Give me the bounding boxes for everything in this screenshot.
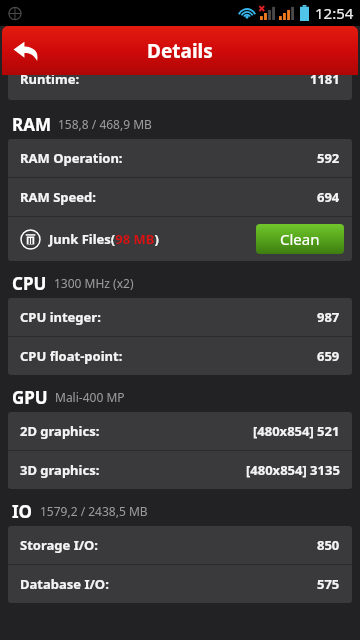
staticText: 158,8 / 468,9 MB — [58, 116, 152, 132]
staticText: GPU — [12, 386, 48, 409]
staticText: 575 — [317, 575, 340, 593]
staticText: CPU integer: — [20, 308, 101, 326]
staticText: CPU float-point: — [20, 347, 123, 365]
staticText: 987 — [317, 308, 340, 326]
staticText: Junk Files(98 MB) — [49, 230, 159, 248]
staticText: IO — [12, 500, 33, 523]
staticText: [480x854] 521 — [253, 422, 340, 440]
button[interactable]: Back — [2, 27, 50, 75]
staticText: Database I/O: — [20, 575, 109, 593]
staticText: 694 — [317, 188, 340, 206]
button[interactable]: Junk Files(98 MB) — [8, 217, 352, 261]
staticText: Details — [147, 38, 213, 64]
button[interactable]: 3D graphics: — [8, 451, 352, 489]
staticText: 1300 MHz (x2) — [54, 275, 134, 291]
staticText: Runtime: — [20, 75, 80, 88]
button[interactable]: CPU integer: — [8, 298, 352, 336]
button[interactable]: RAM Speed: — [8, 178, 352, 216]
staticText: 659 — [317, 347, 340, 365]
button[interactable]: Database I/O: — [8, 565, 352, 603]
staticText: 12:54 — [315, 3, 354, 23]
staticText: [480x854] 3135 — [246, 461, 340, 479]
button[interactable]: Clean — [256, 224, 344, 254]
button[interactable]: Storage I/O: — [8, 526, 352, 564]
button[interactable]: Runtime: — [8, 75, 352, 100]
staticText: 850 — [317, 536, 340, 554]
button[interactable]: RAM Operation: — [8, 139, 352, 177]
staticText: 2D graphics: — [20, 422, 100, 440]
staticText: 3D graphics: — [20, 461, 100, 479]
button[interactable]: 2D graphics: — [8, 412, 352, 450]
staticText: CPU — [12, 272, 47, 295]
staticText: Storage I/O: — [20, 536, 99, 554]
staticText: RAM Speed: — [20, 188, 96, 206]
staticText: RAM Operation: — [20, 149, 123, 167]
staticText: 1181 — [310, 75, 340, 88]
staticText: Clean — [280, 229, 320, 249]
staticText: Mali-400 MP — [55, 389, 125, 405]
staticText: RAM — [12, 113, 51, 136]
staticText: 592 — [317, 149, 340, 167]
button[interactable]: CPU float-point: — [8, 337, 352, 375]
staticText: 1579,2 / 2438,5 MB — [40, 503, 148, 519]
